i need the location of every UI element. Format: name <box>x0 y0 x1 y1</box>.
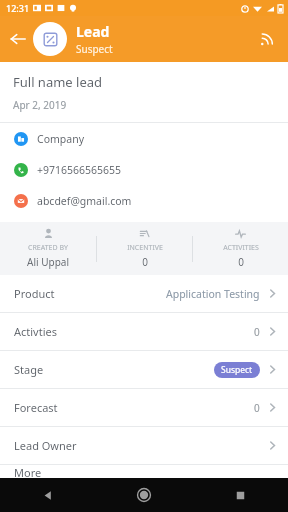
button[interactable]: Feed <box>254 26 280 52</box>
staticText: 0 <box>142 255 148 269</box>
staticText: 0 <box>254 325 260 339</box>
staticText: CREATED BY <box>28 243 68 253</box>
staticText: Suspect <box>76 42 113 56</box>
button[interactable]: Forecast <box>0 389 288 426</box>
staticText: Forecast <box>14 400 58 415</box>
staticText: INCENTIVE <box>127 243 163 253</box>
button[interactable]: Stage <box>0 351 288 388</box>
staticText: Full name lead <box>13 73 103 91</box>
staticText: Activties <box>14 324 57 339</box>
button[interactable]: Back <box>4 25 32 53</box>
button[interactable]: Activties <box>0 313 288 350</box>
staticText: Suspect <box>221 364 253 376</box>
button[interactable]: Home <box>96 478 192 512</box>
button[interactable]: abcdef@gmail.com <box>0 185 288 216</box>
button[interactable]: Recents <box>192 478 288 512</box>
button[interactable]: ACTIVITIES <box>193 222 288 275</box>
staticText: abcdef@gmail.com <box>37 194 132 208</box>
button[interactable]: Company <box>0 123 288 154</box>
staticText: 12:31 <box>6 2 30 14</box>
staticText: ACTIVITIES <box>223 243 259 253</box>
button[interactable]: INCENTIVE <box>97 222 192 275</box>
staticText: Lead <box>76 22 110 41</box>
button[interactable]: Lead Owner <box>0 427 288 464</box>
staticText: 0 <box>254 401 260 415</box>
button[interactable]: +9716566565655 <box>0 154 288 185</box>
staticText: Apr 2, 2019 <box>13 98 67 112</box>
button[interactable]: Back <box>0 478 96 512</box>
staticText: Stage <box>14 362 44 377</box>
staticText: Product <box>14 286 55 301</box>
button[interactable]: More <box>0 465 288 478</box>
staticText: Ali Uppal <box>27 255 69 269</box>
staticText: +9716566565655 <box>37 163 122 177</box>
button[interactable]: CREATED BY <box>0 222 96 275</box>
staticText: More <box>14 465 42 478</box>
button[interactable]: Lead avatar <box>33 22 67 56</box>
button[interactable]: Product <box>0 275 288 312</box>
staticText: Company <box>37 132 84 146</box>
staticText: Lead Owner <box>14 438 77 453</box>
staticText: 0 <box>238 255 244 269</box>
staticText: Application Testing <box>166 287 260 301</box>
